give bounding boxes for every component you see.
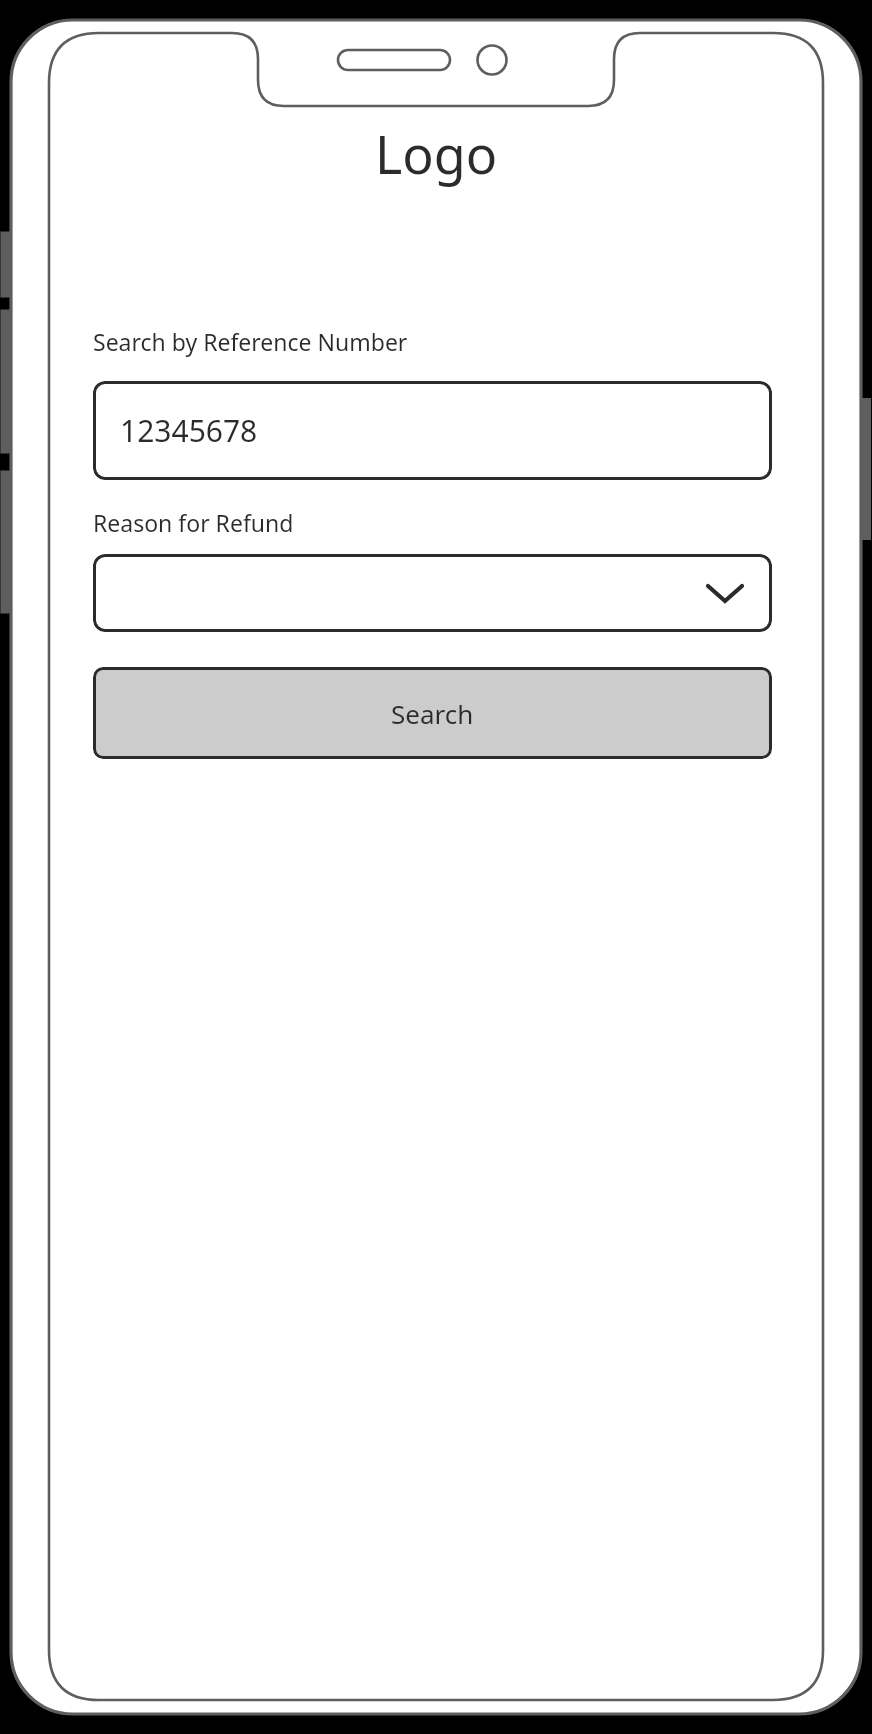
button[interactable]: Search	[93, 667, 772, 759]
staticText: Search	[391, 696, 474, 731]
button[interactable]: Reason for Refund dropdown	[93, 554, 772, 632]
button[interactable]: 12345678	[93, 381, 772, 480]
staticText: 12345678	[120, 410, 258, 451]
staticText: Reason for Refund	[93, 507, 294, 538]
staticText: Logo	[375, 118, 498, 189]
staticText: Search by Reference Number	[93, 326, 408, 357]
